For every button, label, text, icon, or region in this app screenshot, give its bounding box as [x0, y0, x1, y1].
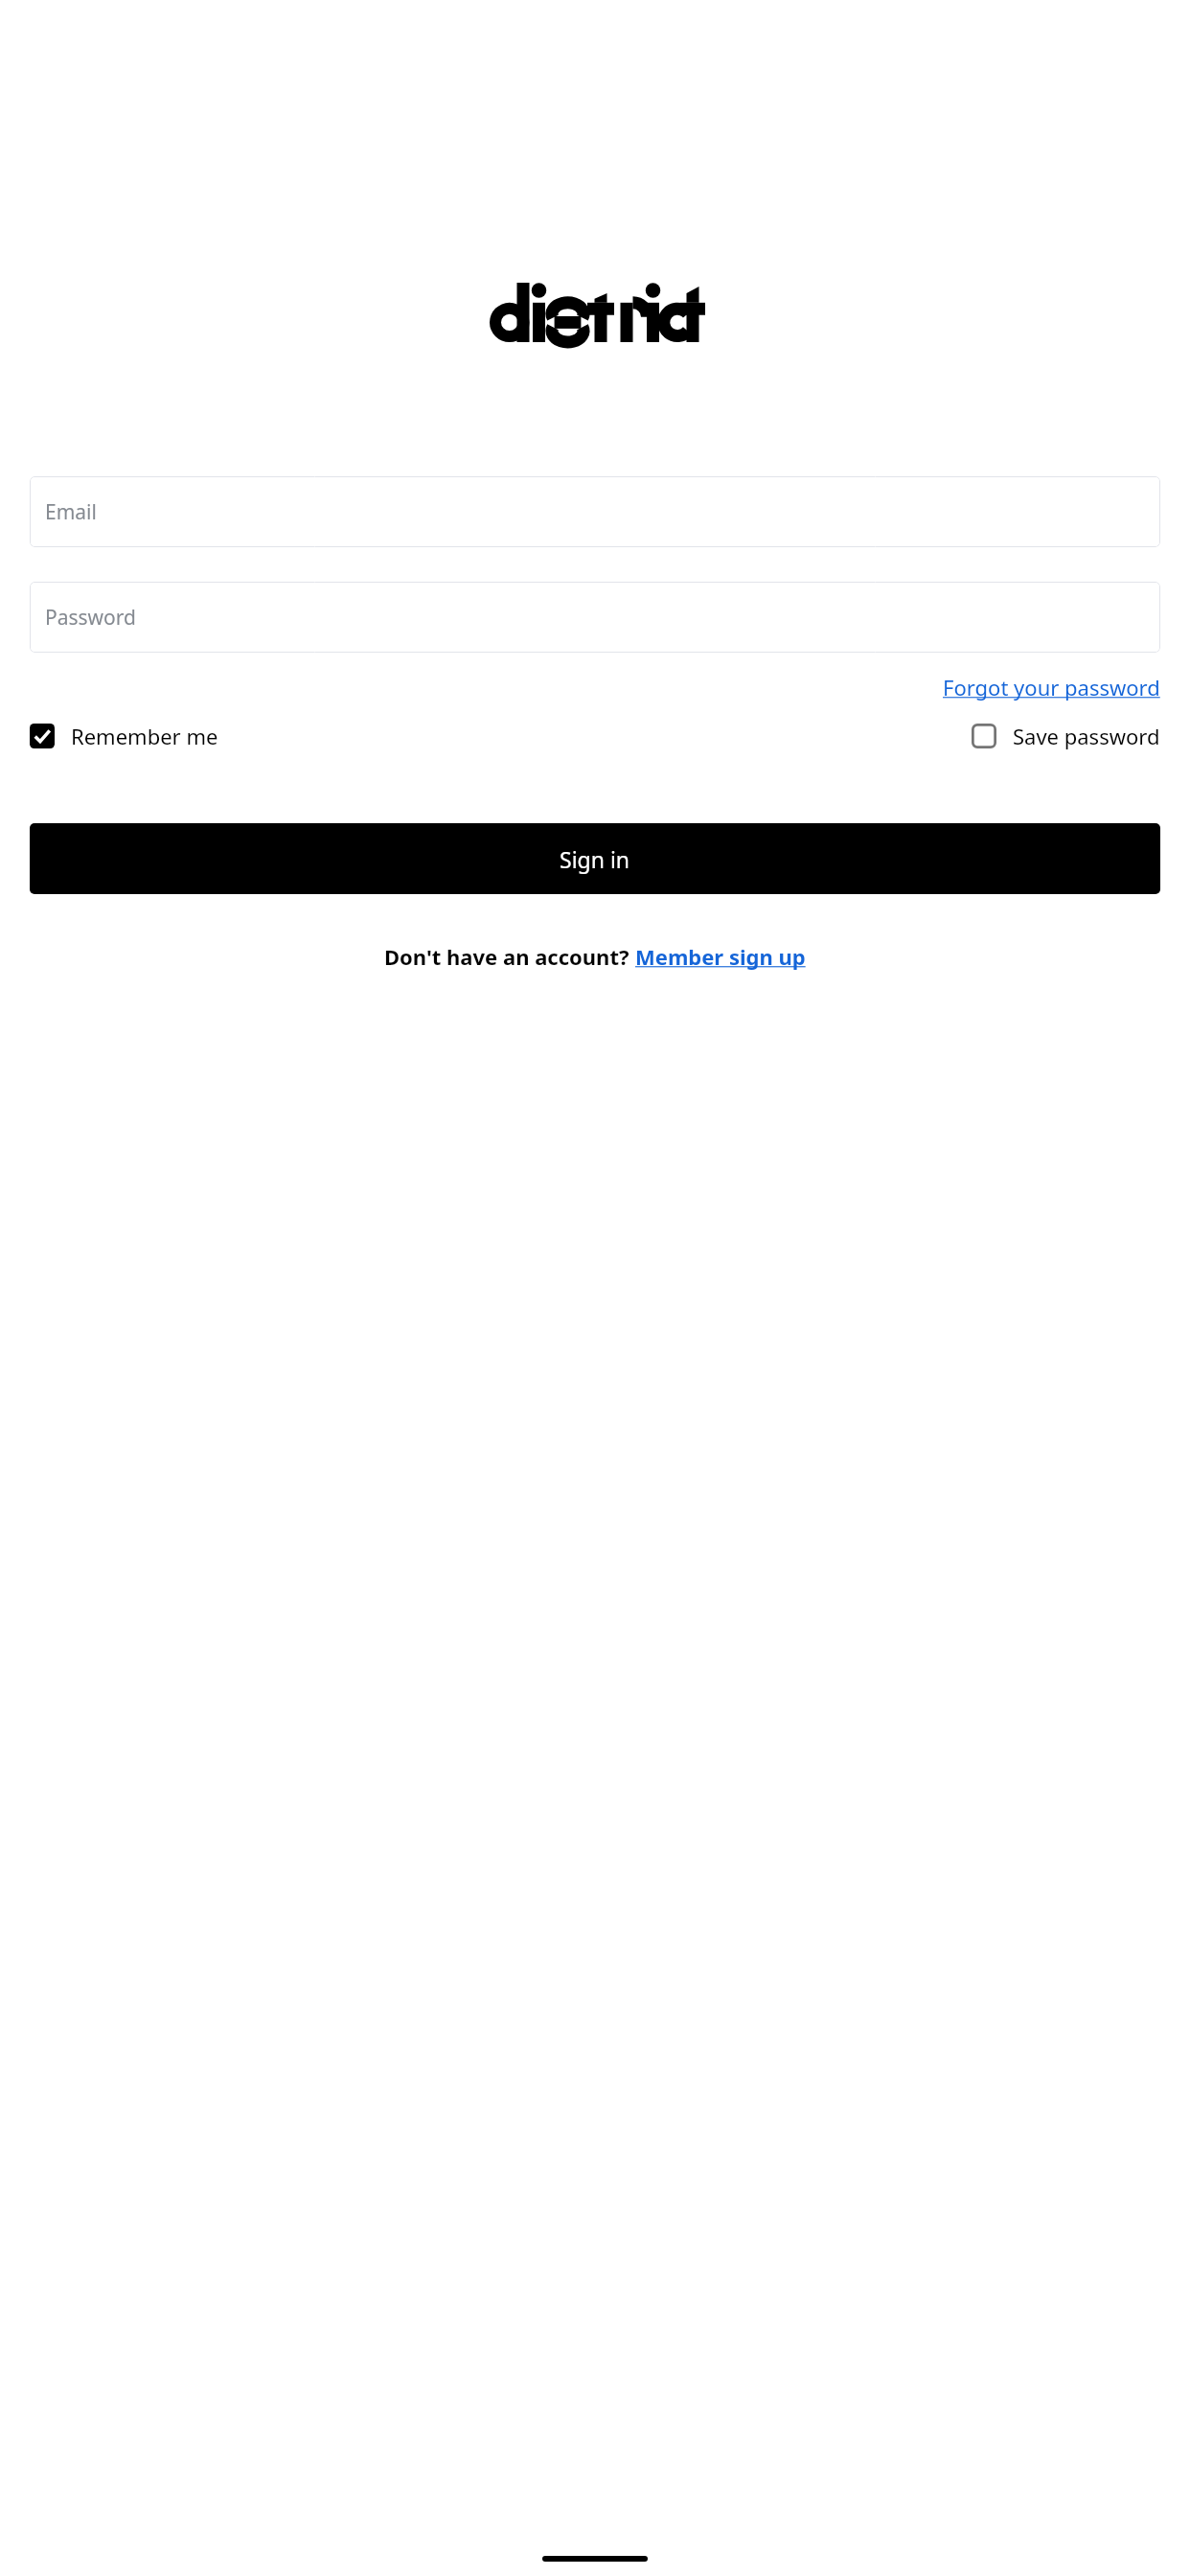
staticText: Sign in — [560, 844, 630, 874]
staticText: Email — [45, 498, 97, 526]
button[interactable]: Remember me — [30, 722, 218, 750]
staticText: Password — [45, 604, 136, 632]
button[interactable]: Sign in — [30, 823, 1160, 894]
staticText: Remember me — [71, 722, 218, 750]
button[interactable]: Member sign up — [635, 942, 806, 971]
button[interactable]: Password — [30, 582, 1160, 653]
button[interactable]: Save password — [972, 722, 1160, 750]
other: Home indicator — [542, 2556, 648, 2562]
staticText: Don't have an account? — [384, 942, 635, 971]
button[interactable]: Forgot your password — [943, 673, 1160, 701]
button[interactable]: Email — [30, 476, 1160, 547]
staticText: Save password — [1013, 722, 1160, 750]
staticText: Forgot your password — [943, 673, 1160, 701]
staticText: Member sign up — [635, 942, 806, 971]
